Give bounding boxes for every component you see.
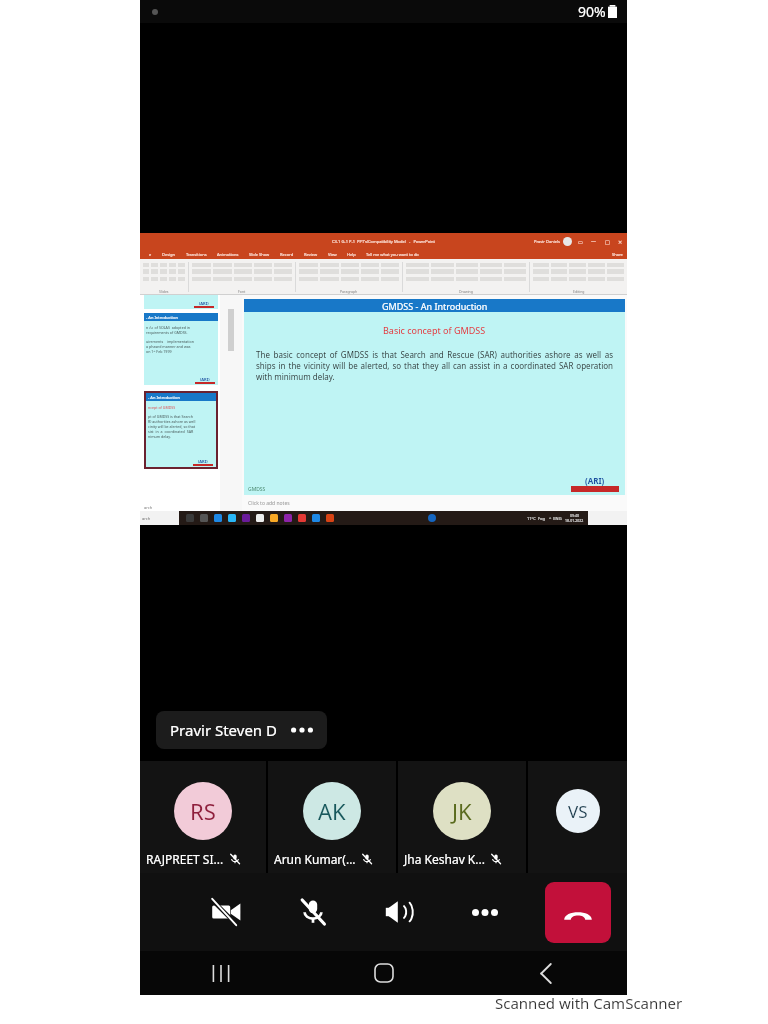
staticText: uirements implementation [146,339,194,344]
staticText: sist in a coordinated SAR [148,429,194,434]
staticText: nimum delay. [148,434,171,439]
staticText: Design [162,252,176,257]
staticText: JK [452,796,472,826]
button[interactable]: Unmute microphone [287,886,339,938]
staticText: e [149,252,152,257]
staticText: 11°C Fog [527,516,545,521]
button[interactable]: Speaker [373,886,425,938]
staticText: Drawing [459,289,473,294]
staticText: on 1ˢᵗ Feb 1999 [146,349,172,354]
staticText: cinity will be alerted, so that [148,424,196,429]
staticText: 90% [578,2,606,21]
staticText: Slide Show [249,252,270,257]
staticText: Record [280,252,294,257]
staticText: Scanned with CamScanner [495,993,683,1013]
staticText: Font [238,289,246,294]
button[interactable]: AK [268,761,396,873]
staticText: (ARI) [585,475,605,486]
staticText: Review [304,252,318,257]
staticText: C3-1 G-1 P-1 PPT's(Compatibility Mode) -… [332,239,436,244]
staticText: □ [605,239,610,245]
staticText: Transitions [186,252,207,257]
staticText: Jha Keshav K... [404,851,485,867]
staticText: Pravir Daniels [534,239,560,244]
staticText: View [328,252,337,257]
staticText: GMDSS [248,486,266,493]
button[interactable]: Home [362,951,406,995]
staticText: arch [144,505,153,510]
button[interactable]: JK [398,761,526,873]
staticText: ^ ENG [549,516,562,521]
staticText: Pravir Steven D [170,720,277,740]
staticText: pt of GMDSS is that Search [148,414,193,419]
staticText: Click to add notes [248,500,290,507]
staticText: Slides [159,289,169,294]
staticText: Help [347,252,356,257]
staticText: AK [318,796,346,826]
staticText: GMDSS - An Introduction [382,300,488,312]
staticText: Share [612,252,623,257]
staticText: a phased manner and was [146,344,191,349]
button[interactable]: Turn camera on [200,886,252,938]
button[interactable]: VS [528,761,627,873]
staticText: 18-01-2022 [565,518,584,523]
staticText: Animations [217,252,239,257]
staticText: RS [190,796,216,826]
button[interactable]: Recent apps [199,951,243,995]
staticText: arch [142,516,151,521]
button[interactable]: Back [524,951,568,995]
staticText: VS [568,800,588,823]
staticText: Editing [573,289,585,294]
staticText: RAJPREET SI... [146,851,224,867]
staticText: - An Introduction [146,315,178,320]
staticText: ▭ [578,239,583,245]
staticText: requirements of GMDSS. [146,330,188,335]
staticText: (ARI) [199,301,209,306]
staticText: The basic concept of GMDSS is that Searc… [256,349,613,382]
staticText: Basic concept of GMDSS [383,324,486,336]
staticText: 09:40 [570,513,579,518]
staticText: n /u of SOLAS adopted in [146,325,190,330]
button[interactable]: Pravir Steven D [156,711,327,749]
staticText: Tell me what you want to do [366,252,419,257]
staticText: - An Introduction [148,395,180,400]
button[interactable]: RS [140,761,266,873]
staticText: Paragraph [340,289,358,294]
staticText: — [591,238,597,245]
staticText: (ARI) [198,459,208,464]
button[interactable]: More options [459,886,511,938]
staticText: (ARI) [200,377,210,382]
button[interactable]: End call [545,882,611,943]
staticText: ✕ [618,239,623,245]
staticText: R) authorities ashore as well [148,419,196,424]
staticText: ncept of GMDSS [148,405,176,410]
staticText: Arun Kumar(... [274,851,356,867]
